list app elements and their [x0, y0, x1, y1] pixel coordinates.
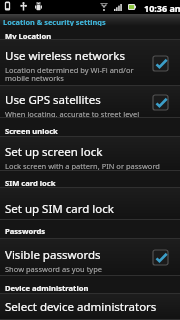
staticText: Select device administrators [5, 299, 157, 315]
staticText: My Location [5, 31, 52, 40]
button[interactable]: Toggle [152, 94, 169, 111]
staticText: Location determined by Wi-Fi and/or mobi… [5, 65, 134, 83]
staticText: SIM card lock [5, 178, 56, 188]
staticText: Set up screen lock [5, 144, 103, 160]
staticText: Passwords [5, 226, 45, 236]
button[interactable]: Select device administrators [0, 294, 180, 320]
staticText: When locating, accurate to street level [5, 109, 140, 118]
staticText: Visible passwords [5, 247, 101, 263]
button[interactable]: Set up SIM card lock [0, 188, 180, 220]
staticText: Show password as you type [5, 264, 103, 274]
staticText: Set up SIM card lock [5, 201, 114, 217]
staticText: Screen unlock [5, 126, 58, 136]
button[interactable]: Set up screen lock [0, 137, 180, 171]
button[interactable]: Toggle [152, 249, 169, 266]
staticText: Use GPS satellites [5, 92, 101, 108]
staticText: Device administration [5, 283, 89, 293]
button[interactable]: Use GPS satellites [0, 86, 180, 118]
button[interactable]: Use wireless networks [0, 40, 180, 86]
staticText: Lock screen with a pattern, PIN or passw… [5, 161, 160, 171]
staticText: Use wireless networks [5, 48, 126, 64]
staticText: Location & security settings [3, 17, 106, 26]
staticText: 10:36 am [144, 2, 180, 14]
button[interactable]: Toggle [152, 55, 169, 72]
button[interactable]: Visible passwords [0, 239, 180, 276]
